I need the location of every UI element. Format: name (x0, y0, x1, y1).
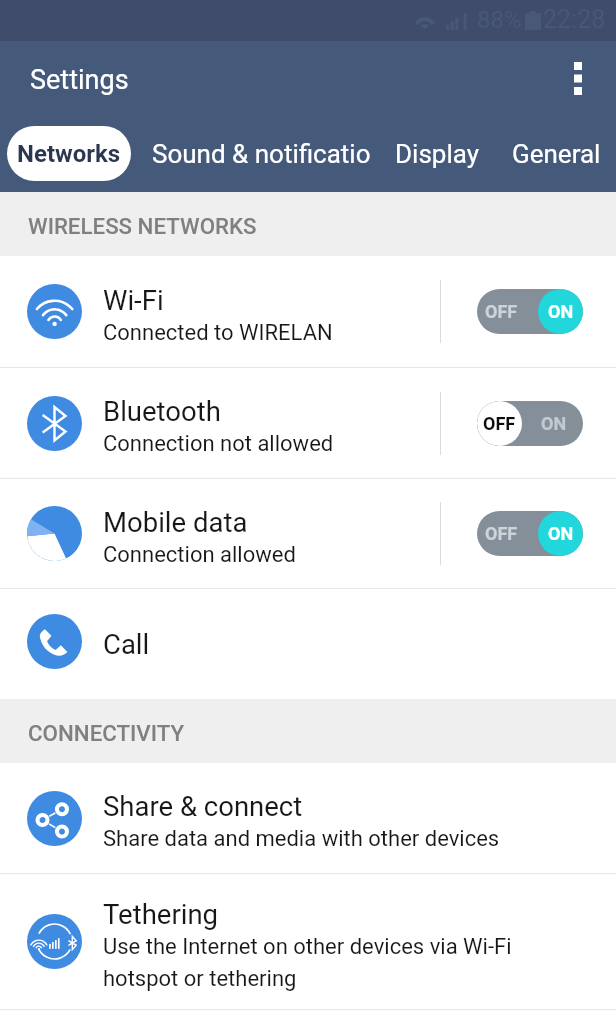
button[interactable]: Toggle Mobile data (441, 479, 616, 588)
button[interactable]: More options (549, 49, 607, 107)
staticText: Connected to WIRELAN (103, 320, 333, 346)
staticText: OFF (483, 413, 516, 434)
staticText: ON (548, 301, 574, 322)
staticText: Share & connect (103, 790, 303, 822)
staticText: 22:28 (543, 5, 606, 34)
button[interactable]: Bluetooth (0, 368, 616, 478)
button[interactable]: Tethering (0, 874, 616, 1009)
button[interactable]: General (512, 127, 601, 181)
button[interactable]: Networks (7, 126, 131, 181)
button[interactable]: Call (0, 589, 616, 699)
staticText: Share data and media with other devices (103, 826, 500, 852)
staticText: OFF (485, 301, 518, 322)
button[interactable]: Sound & notificatio (152, 127, 371, 181)
staticText: Tethering (103, 898, 219, 930)
staticText: Use the Internet on other devices via Wi… (103, 934, 588, 992)
staticText: General (512, 139, 601, 169)
button[interactable]: Wi-Fi (0, 256, 616, 367)
staticText: Call (103, 628, 150, 660)
staticText: Sound & notificatio (152, 139, 371, 169)
staticText: Mobile data (103, 506, 248, 538)
staticText: CONNECTIVITY (28, 720, 185, 746)
staticText: ON (541, 413, 567, 434)
staticText: Wi-Fi (103, 284, 164, 316)
button[interactable]: Display (395, 127, 479, 181)
button[interactable]: Mobile data (0, 479, 616, 588)
staticText: Settings (30, 64, 129, 96)
staticText: ON (548, 523, 574, 544)
staticText: Connection not allowed (103, 431, 334, 457)
staticText: Networks (17, 140, 121, 168)
button[interactable]: Toggle Bluetooth (441, 368, 616, 478)
button[interactable]: Share & connect (0, 763, 616, 873)
button[interactable]: Toggle Wi-Fi (441, 256, 616, 367)
staticText: 88% (477, 6, 522, 34)
staticText: Display (395, 139, 479, 169)
staticText: OFF (485, 523, 518, 544)
staticText: Bluetooth (103, 395, 221, 427)
staticText: WIRELESS NETWORKS (28, 213, 257, 239)
staticText: Connection allowed (103, 542, 296, 568)
